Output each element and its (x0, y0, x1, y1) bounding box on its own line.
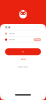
button[interactable]: 登 录 (5, 48, 41, 55)
staticText: 请输入手机号 (9, 33, 15, 34)
staticText: 登 录 (22, 51, 24, 52)
staticText: 登录 (5, 26, 11, 29)
staticText: 获取验证码 (35, 39, 40, 40)
staticText: 登录即同意《用户协议》 (17, 66, 28, 68)
staticText: 新用户注册 (20, 58, 25, 60)
button[interactable]: 获取验证码 (34, 38, 41, 41)
button[interactable]: 新用户注册 (20, 57, 25, 61)
staticText: 请输入验证码 (9, 39, 15, 40)
